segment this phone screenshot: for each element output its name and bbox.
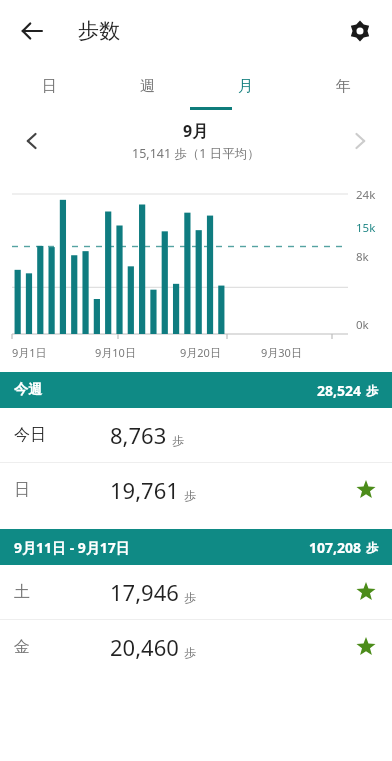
- staticText: 今日: [14, 425, 46, 445]
- staticText: 歩: [172, 433, 184, 448]
- staticText: 0k: [356, 317, 369, 333]
- button[interactable]: 今日: [0, 408, 392, 462]
- staticText: 9月30日: [261, 345, 302, 360]
- staticText: 17,946: [110, 577, 179, 607]
- staticText: 8,763: [110, 420, 167, 450]
- button[interactable]: 金: [0, 620, 392, 674]
- staticText: 日: [42, 77, 57, 96]
- staticText: 19,761: [110, 475, 179, 505]
- staticText: 15,141 歩（1 日平均）: [132, 145, 260, 162]
- staticText: 28,524: [317, 381, 362, 400]
- button[interactable]: Settings: [338, 9, 382, 53]
- button[interactable]: 土: [0, 565, 392, 619]
- staticText: 9月1日: [12, 345, 47, 360]
- staticText: 日: [14, 480, 30, 500]
- staticText: 8k: [356, 249, 369, 265]
- staticText: 月: [238, 77, 253, 96]
- staticText: 歩: [184, 590, 196, 605]
- staticText: 土: [14, 582, 30, 602]
- staticText: 9月11日 - 9月17日: [14, 538, 130, 557]
- button[interactable]: 今週: [0, 372, 392, 408]
- button[interactable]: Next month: [338, 119, 382, 163]
- staticText: 9月20日: [180, 345, 221, 360]
- staticText: 歩数: [78, 18, 120, 44]
- staticText: 107,208: [309, 538, 362, 557]
- staticText: 9月10日: [95, 345, 136, 360]
- staticText: 歩: [366, 540, 378, 555]
- staticText: 週: [140, 77, 155, 96]
- staticText: 15k: [356, 220, 376, 236]
- staticText: 9月: [183, 120, 209, 142]
- button[interactable]: Back: [10, 9, 54, 53]
- button[interactable]: 日: [0, 463, 392, 517]
- staticText: 年: [336, 77, 351, 96]
- staticText: 20,460: [110, 632, 179, 662]
- staticText: 歩: [366, 383, 378, 398]
- staticText: 24k: [356, 187, 376, 203]
- staticText: 金: [14, 637, 30, 657]
- button[interactable]: 9月11日 - 9月17日: [0, 529, 392, 565]
- staticText: 歩: [184, 645, 196, 660]
- button[interactable]: 年: [294, 62, 392, 110]
- button[interactable]: 日: [0, 62, 98, 110]
- button[interactable]: 月: [196, 62, 294, 110]
- staticText: 今週: [14, 381, 42, 399]
- button[interactable]: Previous month: [10, 119, 54, 163]
- button[interactable]: 週: [98, 62, 196, 110]
- staticText: 歩: [184, 488, 196, 503]
